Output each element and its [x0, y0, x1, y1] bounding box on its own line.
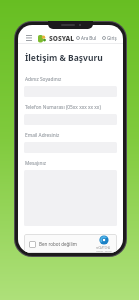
button[interactable]: Menu [24, 33, 34, 43]
staticText: SOSYAL [49, 34, 75, 43]
button[interactable]: Giriş [102, 35, 117, 41]
staticText: Giriş [107, 35, 117, 41]
staticText: Telefon Numarası (05xx xxx xx xx) [25, 104, 101, 111]
staticText: reCAPTCHA [96, 246, 112, 250]
button[interactable]: Ben robot değilim [24, 234, 117, 253]
button[interactable]: Ben robot değilim [29, 241, 36, 248]
staticText: Adınız Soyadınız [25, 76, 62, 83]
button[interactable]: Ara Bul [76, 35, 97, 41]
staticText: Ara Bul [81, 35, 97, 41]
staticText: Email Adresiniz [25, 132, 60, 139]
staticText: İletişim & Başvuru [25, 52, 103, 64]
staticText: Mesajınız [25, 160, 46, 167]
staticText: Gizlilik - Şartlar [96, 250, 112, 253]
staticText: Ben robot değilim [39, 241, 77, 247]
button[interactable]: SOSYAL [38, 34, 75, 43]
